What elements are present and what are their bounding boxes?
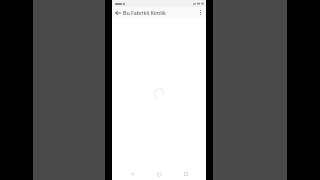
button[interactable]: Bu Fabrikli Kimlik Doğrulaması [123,7,195,18]
button[interactable]: Ana sayfa [153,168,165,180]
button[interactable]: Geri [127,168,139,180]
button[interactable]: Geri [112,7,123,18]
staticText: Bu Fabrikli Kimlik Doğrulaması [123,9,195,16]
button[interactable]: Daha fazla seçenek [195,7,206,18]
button[interactable]: Son kullanılanlar [180,168,192,180]
